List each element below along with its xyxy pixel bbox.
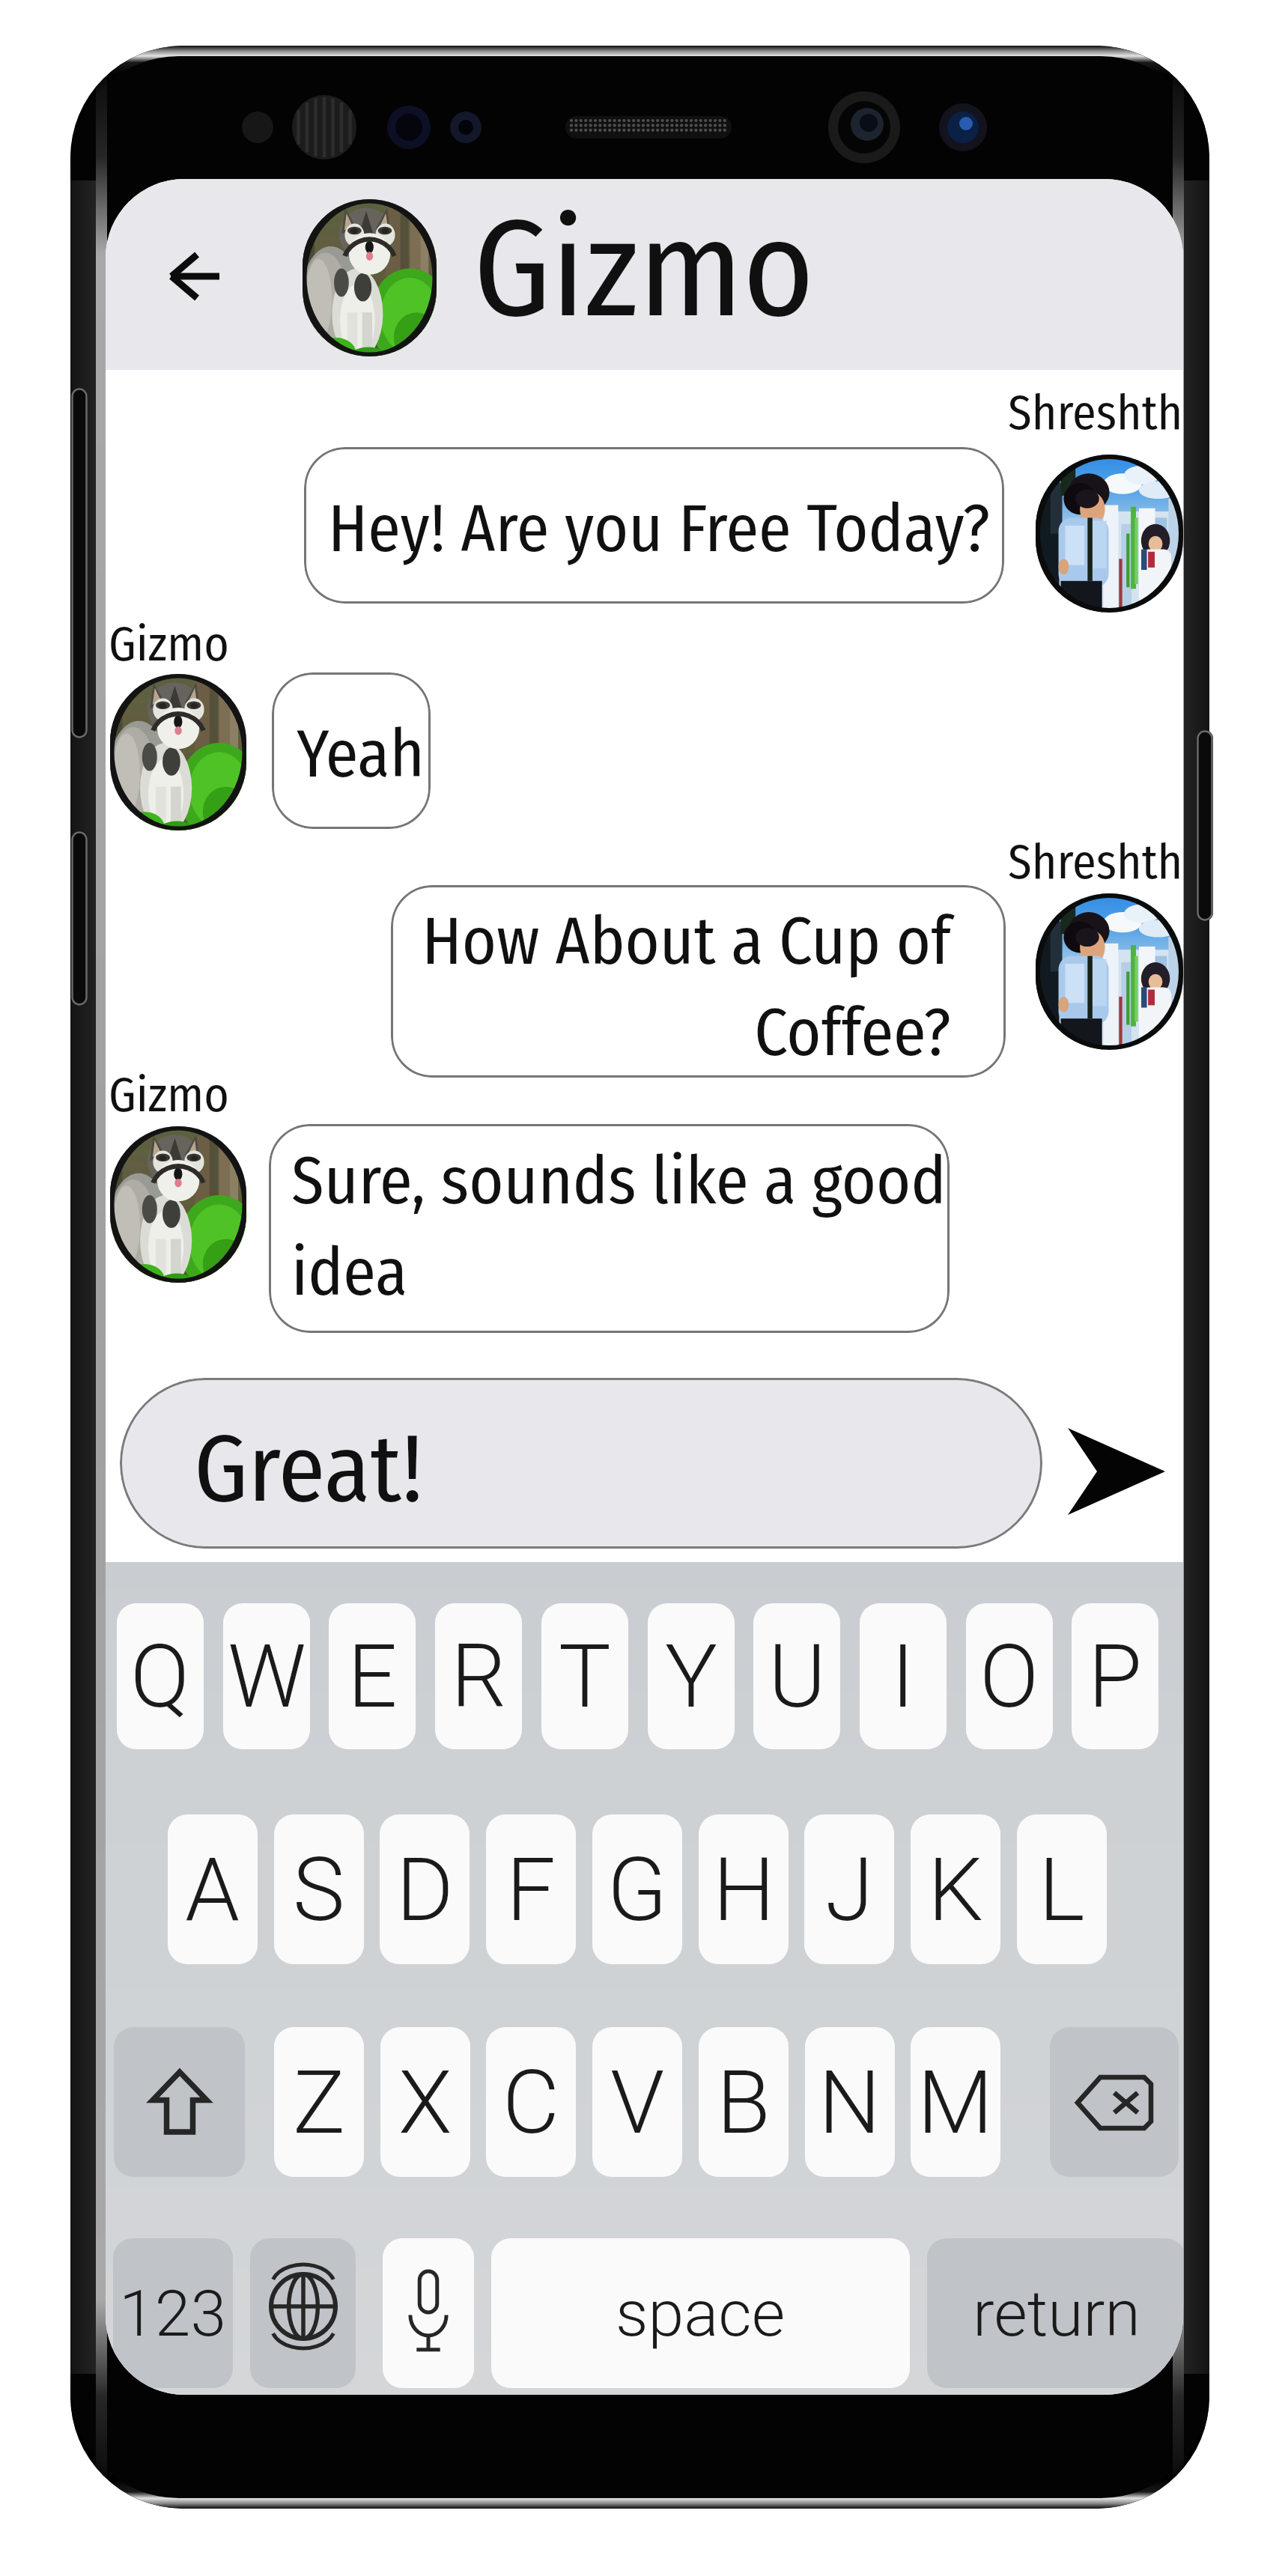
staticText: O [979, 1625, 1039, 1728]
button[interactable]: Backspace [1050, 2027, 1179, 2177]
button[interactable]: Back [139, 217, 255, 337]
button[interactable]: Voice input [383, 2238, 474, 2388]
staticText: E [347, 1625, 398, 1728]
button[interactable]: V [592, 2027, 682, 2177]
staticText: return [973, 2276, 1140, 2351]
button[interactable]: R [435, 1603, 522, 1749]
staticText: T [559, 1625, 611, 1728]
staticText: 123 [119, 2276, 227, 2351]
staticText: Great! [194, 1412, 424, 1525]
staticText: K [928, 1838, 983, 1941]
staticText: Gizmo [473, 189, 815, 351]
staticText: Gizmo [109, 1066, 229, 1124]
button[interactable]: N [805, 2027, 895, 2177]
button[interactable] [304, 447, 1004, 604]
button[interactable]: S [274, 1814, 364, 1964]
button[interactable]: Z [274, 2027, 364, 2177]
staticText: Hey! Are you Free Today? [328, 490, 991, 569]
button[interactable]: Gizmo [292, 189, 831, 367]
staticText: D [396, 1838, 454, 1941]
button[interactable]: L [1017, 1814, 1107, 1964]
button[interactable]: A [168, 1814, 258, 1964]
button[interactable]: M [911, 2027, 1000, 2177]
staticText: Shreshth [1008, 384, 1183, 442]
staticText: Y [665, 1625, 718, 1728]
button[interactable]: X [380, 2027, 470, 2177]
staticText: Sure, sounds like a good idea [291, 1142, 947, 1312]
button[interactable] [272, 672, 431, 829]
staticText: N [818, 2051, 881, 2154]
button[interactable]: Shift [114, 2027, 245, 2177]
staticText: Q [130, 1625, 190, 1728]
button[interactable]: F [486, 1814, 576, 1964]
button[interactable]: Y [648, 1603, 735, 1749]
staticText: B [717, 2051, 771, 2154]
button[interactable]: B [699, 2027, 789, 2177]
staticText: How About a Cup of Coffee? [416, 902, 951, 1090]
staticText: J [825, 1838, 874, 1941]
button[interactable]: Send [1057, 1415, 1177, 1528]
staticText: G [607, 1838, 668, 1941]
button[interactable]: C [486, 2027, 576, 2177]
button[interactable]: Q [117, 1603, 204, 1749]
staticText: Yeah [297, 715, 425, 795]
button[interactable] [391, 885, 1006, 1078]
button[interactable]: O [966, 1603, 1053, 1749]
staticText: space [616, 2276, 786, 2351]
button[interactable]: Great! [120, 1378, 1042, 1549]
staticText: X [398, 2051, 452, 2154]
staticText: I [891, 1625, 915, 1728]
button[interactable]: E [329, 1603, 416, 1749]
button[interactable]: W [223, 1603, 310, 1749]
button[interactable]: P [1072, 1603, 1158, 1749]
button[interactable]: space [491, 2238, 910, 2388]
staticText: Z [293, 2051, 345, 2154]
button[interactable]: D [380, 1814, 470, 1964]
staticText: W [228, 1625, 306, 1728]
button[interactable]: H [699, 1814, 789, 1964]
button[interactable]: 123 [113, 2238, 233, 2388]
button[interactable]: Change keyboard language [250, 2238, 356, 2388]
staticText: A [185, 1838, 240, 1941]
staticText: Gizmo [109, 616, 229, 673]
button[interactable]: T [541, 1603, 628, 1749]
staticText: U [768, 1625, 826, 1728]
staticText: S [293, 1838, 345, 1941]
staticText: P [1088, 1625, 1143, 1728]
button[interactable] [269, 1124, 950, 1333]
staticText: C [502, 2051, 559, 2154]
button[interactable]: G [592, 1814, 682, 1964]
button[interactable]: U [753, 1603, 840, 1749]
staticText: Shreshth [1008, 833, 1183, 891]
button[interactable]: return [927, 2238, 1183, 2388]
staticText: V [610, 2051, 665, 2154]
staticText: M [917, 2051, 994, 2154]
staticText: L [1039, 1838, 1085, 1941]
staticText: F [506, 1838, 556, 1941]
staticText: H [713, 1838, 775, 1941]
button[interactable]: J [804, 1814, 894, 1964]
button[interactable]: I [860, 1603, 947, 1749]
button[interactable]: K [911, 1814, 1000, 1964]
staticText: R [451, 1625, 507, 1728]
